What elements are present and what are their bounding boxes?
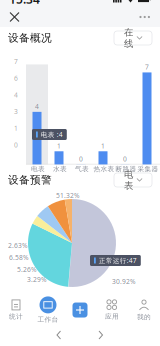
staticText: 气表 [75, 165, 89, 173]
staticText: 0 [123, 154, 127, 163]
button[interactable]: 统计 [0, 296, 32, 324]
staticText: 应用 [105, 312, 119, 321]
staticText: 7 [145, 63, 149, 71]
staticText: 7 [14, 57, 18, 66]
staticText: 3 [14, 107, 18, 116]
staticText: 4 [35, 102, 39, 111]
staticText: 3.29% [27, 275, 47, 284]
staticText: 4 [14, 90, 18, 99]
staticText: 30.92% [112, 277, 136, 286]
staticText: 在线 [124, 26, 133, 49]
staticText: 2.63% [8, 241, 28, 250]
staticText: 0 [14, 140, 18, 149]
button[interactable]: Add [64, 296, 96, 324]
staticText: 热水表 [93, 165, 114, 173]
button[interactable]: 在线 [114, 31, 152, 45]
staticText: 水表 [53, 165, 67, 173]
staticText: 正常运行:47 [99, 256, 137, 265]
button[interactable]: Close [4, 6, 25, 27]
staticText: 1 [101, 141, 105, 150]
button[interactable]: 应用 [96, 296, 128, 324]
button[interactable]: 电表 [114, 173, 152, 187]
staticText: 工作台 [37, 315, 58, 324]
button[interactable]: Forward [91, 323, 111, 346]
staticText: 我的 [137, 313, 151, 321]
button[interactable]: Back [49, 323, 69, 346]
button[interactable]: 我的 [128, 296, 160, 324]
staticText: 15:34 [9, 0, 40, 7]
staticText: 6 [14, 74, 18, 83]
staticText: 5.26% [17, 265, 37, 274]
staticText: 电表 [31, 165, 45, 173]
staticText: 断路器 [115, 165, 136, 173]
staticText: 采集器 [137, 165, 158, 173]
staticText: 设备预警 [8, 173, 52, 186]
staticText: 1 [14, 124, 18, 133]
button[interactable]: 工作台 [32, 296, 64, 324]
staticText: 1 [57, 141, 61, 150]
staticText: 电表 :4 [41, 130, 63, 139]
staticText: 电表 [124, 168, 133, 191]
button[interactable]: More [133, 10, 156, 24]
staticText: 设备概况 [8, 31, 52, 44]
staticText: 统计 [9, 312, 23, 321]
staticText: 6.58% [9, 253, 29, 262]
staticText: 51.32% [56, 191, 80, 200]
staticText: 0 [79, 154, 83, 163]
